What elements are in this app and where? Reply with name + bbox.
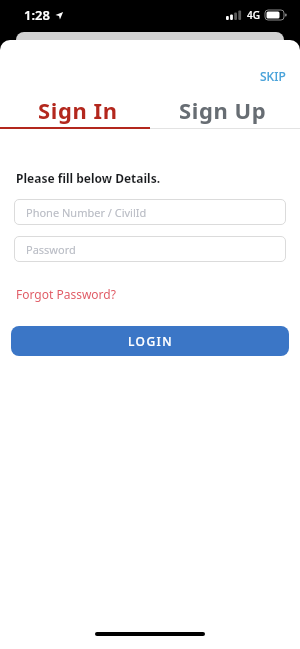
staticText: Please fill below Details.: [16, 170, 161, 186]
button[interactable]: Password: [14, 236, 286, 262]
staticText: Sign Up: [179, 95, 267, 125]
staticText: 4G: [247, 8, 260, 22]
button[interactable]: Sign In: [0, 87, 150, 127]
staticText: SKIP: [260, 68, 286, 84]
staticText: LOGIN: [128, 333, 173, 349]
button[interactable]: Sign Up: [150, 87, 300, 127]
staticText: Phone Number / CivilId: [26, 205, 147, 220]
button[interactable]: Phone Number / CivilId: [14, 199, 286, 225]
button[interactable]: SKIP: [260, 68, 286, 84]
button[interactable]: LOGIN: [11, 326, 289, 356]
button[interactable]: Forgot Password?: [16, 286, 116, 302]
staticText: Sign In: [38, 95, 118, 125]
staticText: 1:28: [24, 6, 50, 24]
staticText: Password: [26, 242, 76, 257]
staticText: Forgot Password?: [16, 286, 116, 302]
